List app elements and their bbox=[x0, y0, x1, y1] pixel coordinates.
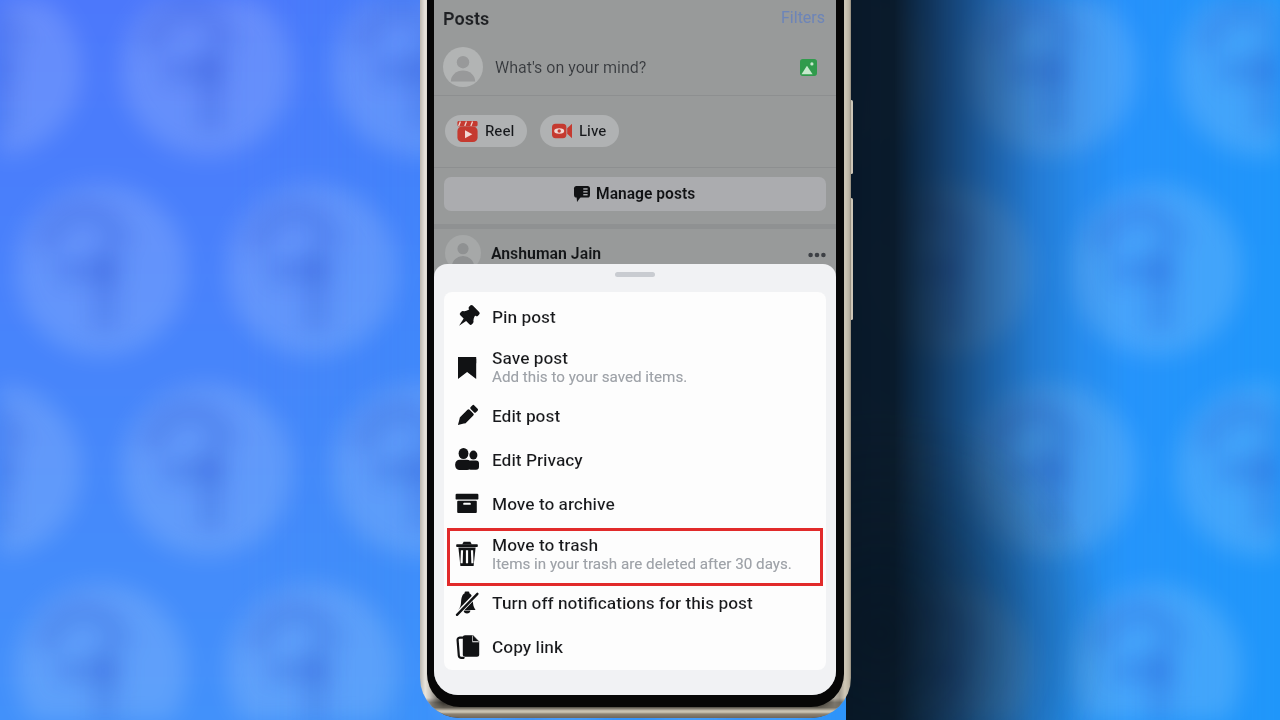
staticText: Move to archive bbox=[492, 494, 615, 514]
button[interactable]: Move to trash bbox=[444, 526, 826, 581]
button[interactable]: Copy link bbox=[444, 625, 826, 669]
button[interactable]: Reel bbox=[457, 115, 515, 147]
button[interactable]: Anshuman Jain bbox=[445, 235, 827, 271]
staticText: What's on your mind? bbox=[495, 58, 647, 77]
button[interactable]: Edit post bbox=[444, 394, 826, 438]
button[interactable]: Turn off notifications for this post bbox=[444, 581, 826, 625]
staticText: Add this to your saved items. bbox=[492, 368, 688, 386]
button[interactable]: Filters bbox=[781, 8, 826, 27]
staticText: Pin post bbox=[492, 307, 556, 327]
staticText: Items in your trash are deleted after 30… bbox=[492, 555, 792, 573]
button[interactable]: Save post bbox=[444, 339, 826, 394]
staticText: Edit post bbox=[492, 406, 561, 426]
button[interactable]: Pin post bbox=[444, 295, 826, 339]
button[interactable]: What's on your mind? bbox=[443, 47, 827, 87]
staticText: Edit Privacy bbox=[492, 450, 583, 470]
staticText: Save post bbox=[492, 348, 569, 368]
staticText: Anshuman Jain bbox=[491, 244, 602, 263]
staticText: Posts bbox=[443, 8, 490, 29]
button[interactable]: Move to archive bbox=[444, 482, 826, 526]
staticText: Manage posts bbox=[596, 185, 696, 203]
button[interactable]: Posts bbox=[443, 8, 490, 29]
staticText: Move to trash bbox=[492, 535, 599, 555]
staticText: Turn off notifications for this post bbox=[492, 593, 753, 613]
staticText: Filters bbox=[781, 8, 826, 27]
staticText: Reel bbox=[485, 122, 515, 140]
button[interactable]: Add photo bbox=[800, 59, 817, 76]
button[interactable]: Live bbox=[552, 115, 607, 147]
button[interactable]: Edit Privacy bbox=[444, 438, 826, 482]
staticText: Copy link bbox=[492, 637, 564, 657]
staticText: Live bbox=[579, 122, 607, 140]
button[interactable]: More options bbox=[808, 246, 826, 264]
button[interactable]: Manage posts bbox=[444, 177, 826, 211]
